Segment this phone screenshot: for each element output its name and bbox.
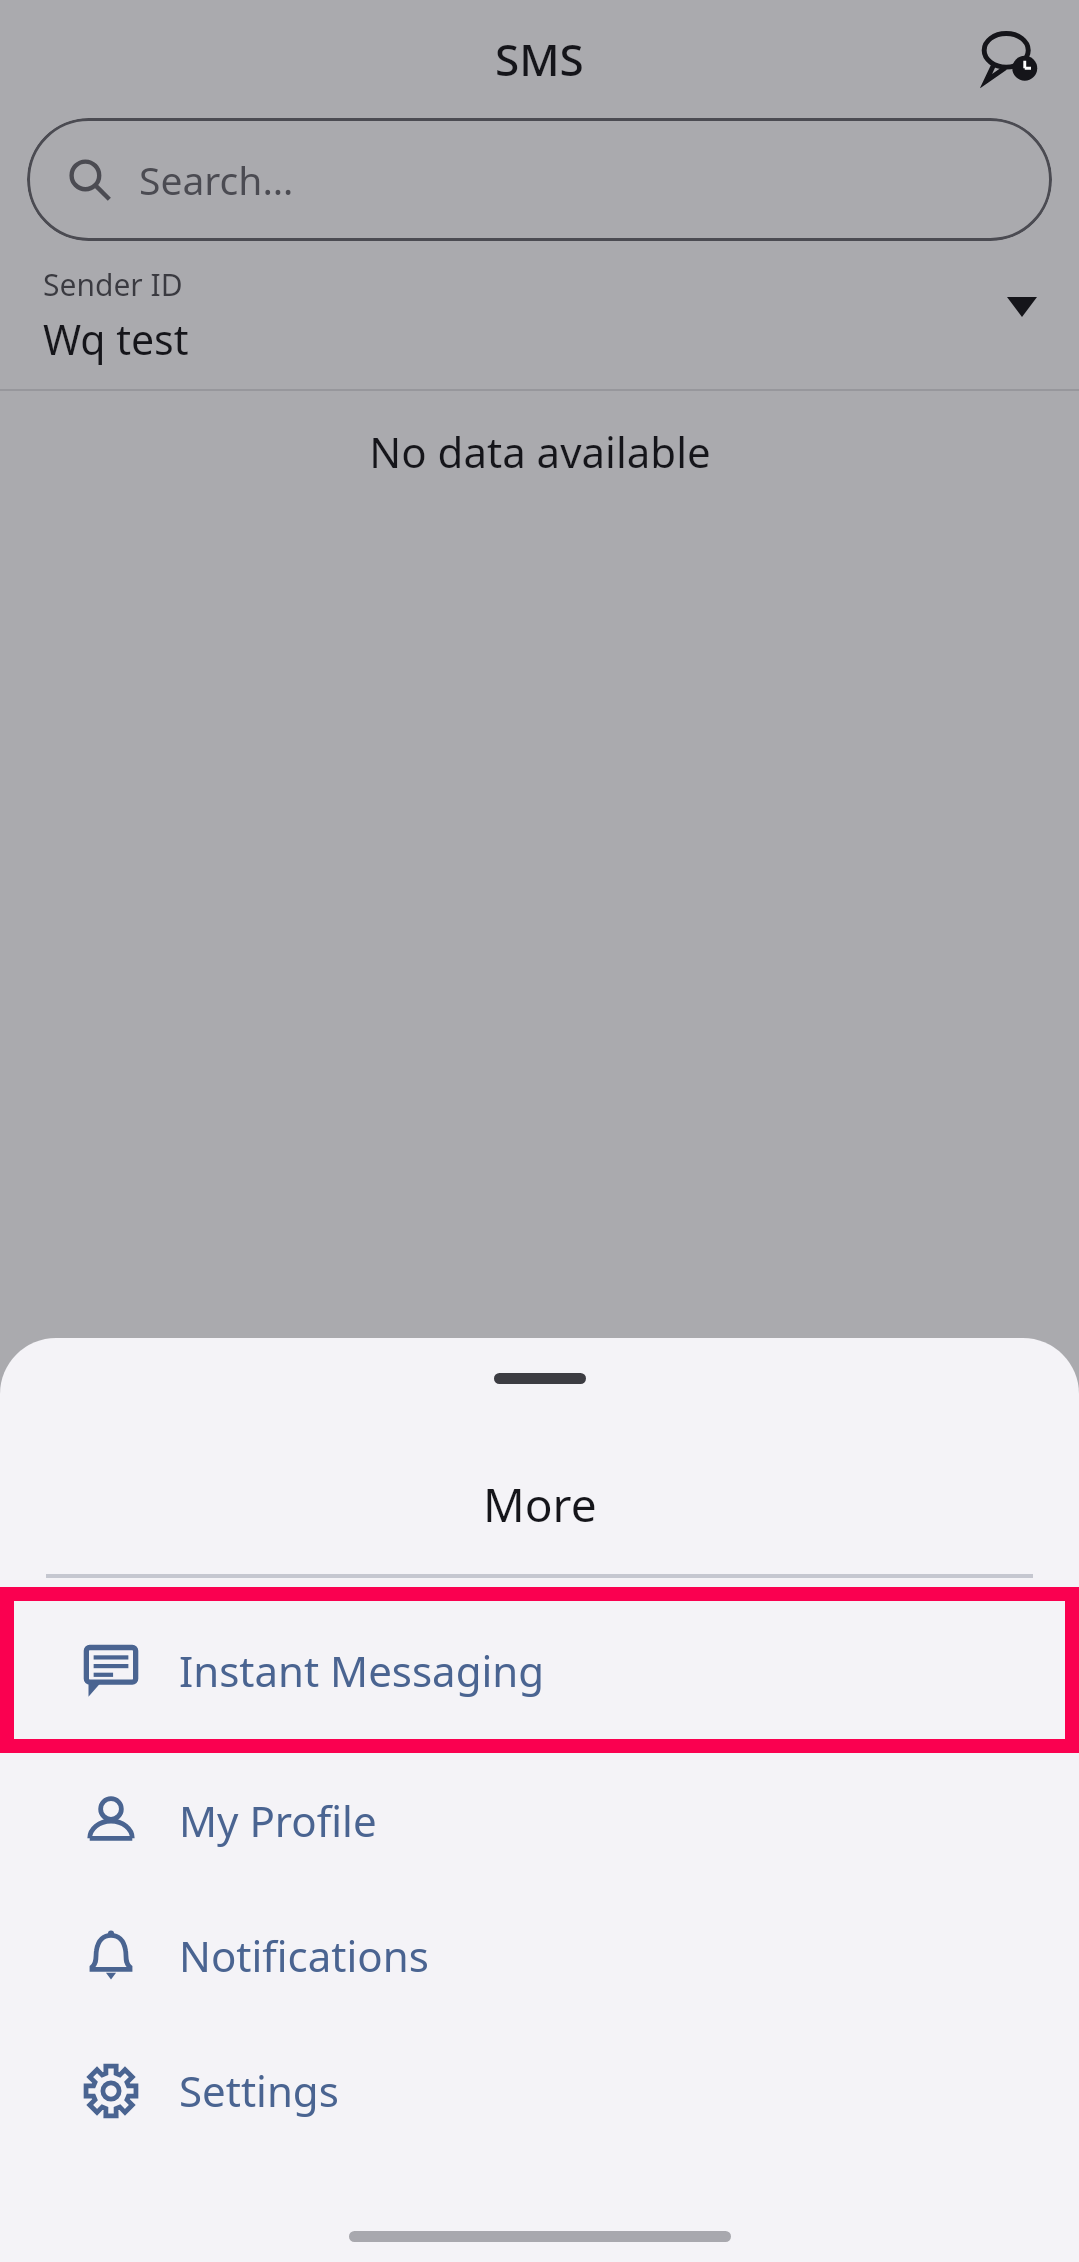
- staticText: Instant Messaging: [179, 1642, 545, 1699]
- staticText: My Profile: [179, 1792, 377, 1849]
- button[interactable]: Settings: [0, 2023, 1079, 2158]
- staticText: No data available: [369, 423, 711, 480]
- staticText: More: [483, 1473, 597, 1536]
- button[interactable]: My Profile: [0, 1753, 1079, 1888]
- button[interactable]: Search…: [27, 118, 1052, 241]
- staticText: Settings: [179, 2062, 339, 2119]
- button[interactable]: Instant Messaging: [0, 1587, 1079, 1753]
- staticText: SMS: [495, 29, 584, 89]
- staticText: Notifications: [179, 1927, 429, 1984]
- button[interactable]: Sender ID: [0, 241, 1079, 389]
- button[interactable]: Scheduled messages: [969, 16, 1055, 102]
- staticText: Wq test: [43, 311, 189, 367]
- button[interactable]: Notifications: [0, 1888, 1079, 2023]
- staticText: Search…: [139, 153, 294, 206]
- staticText: Sender ID: [43, 264, 183, 305]
